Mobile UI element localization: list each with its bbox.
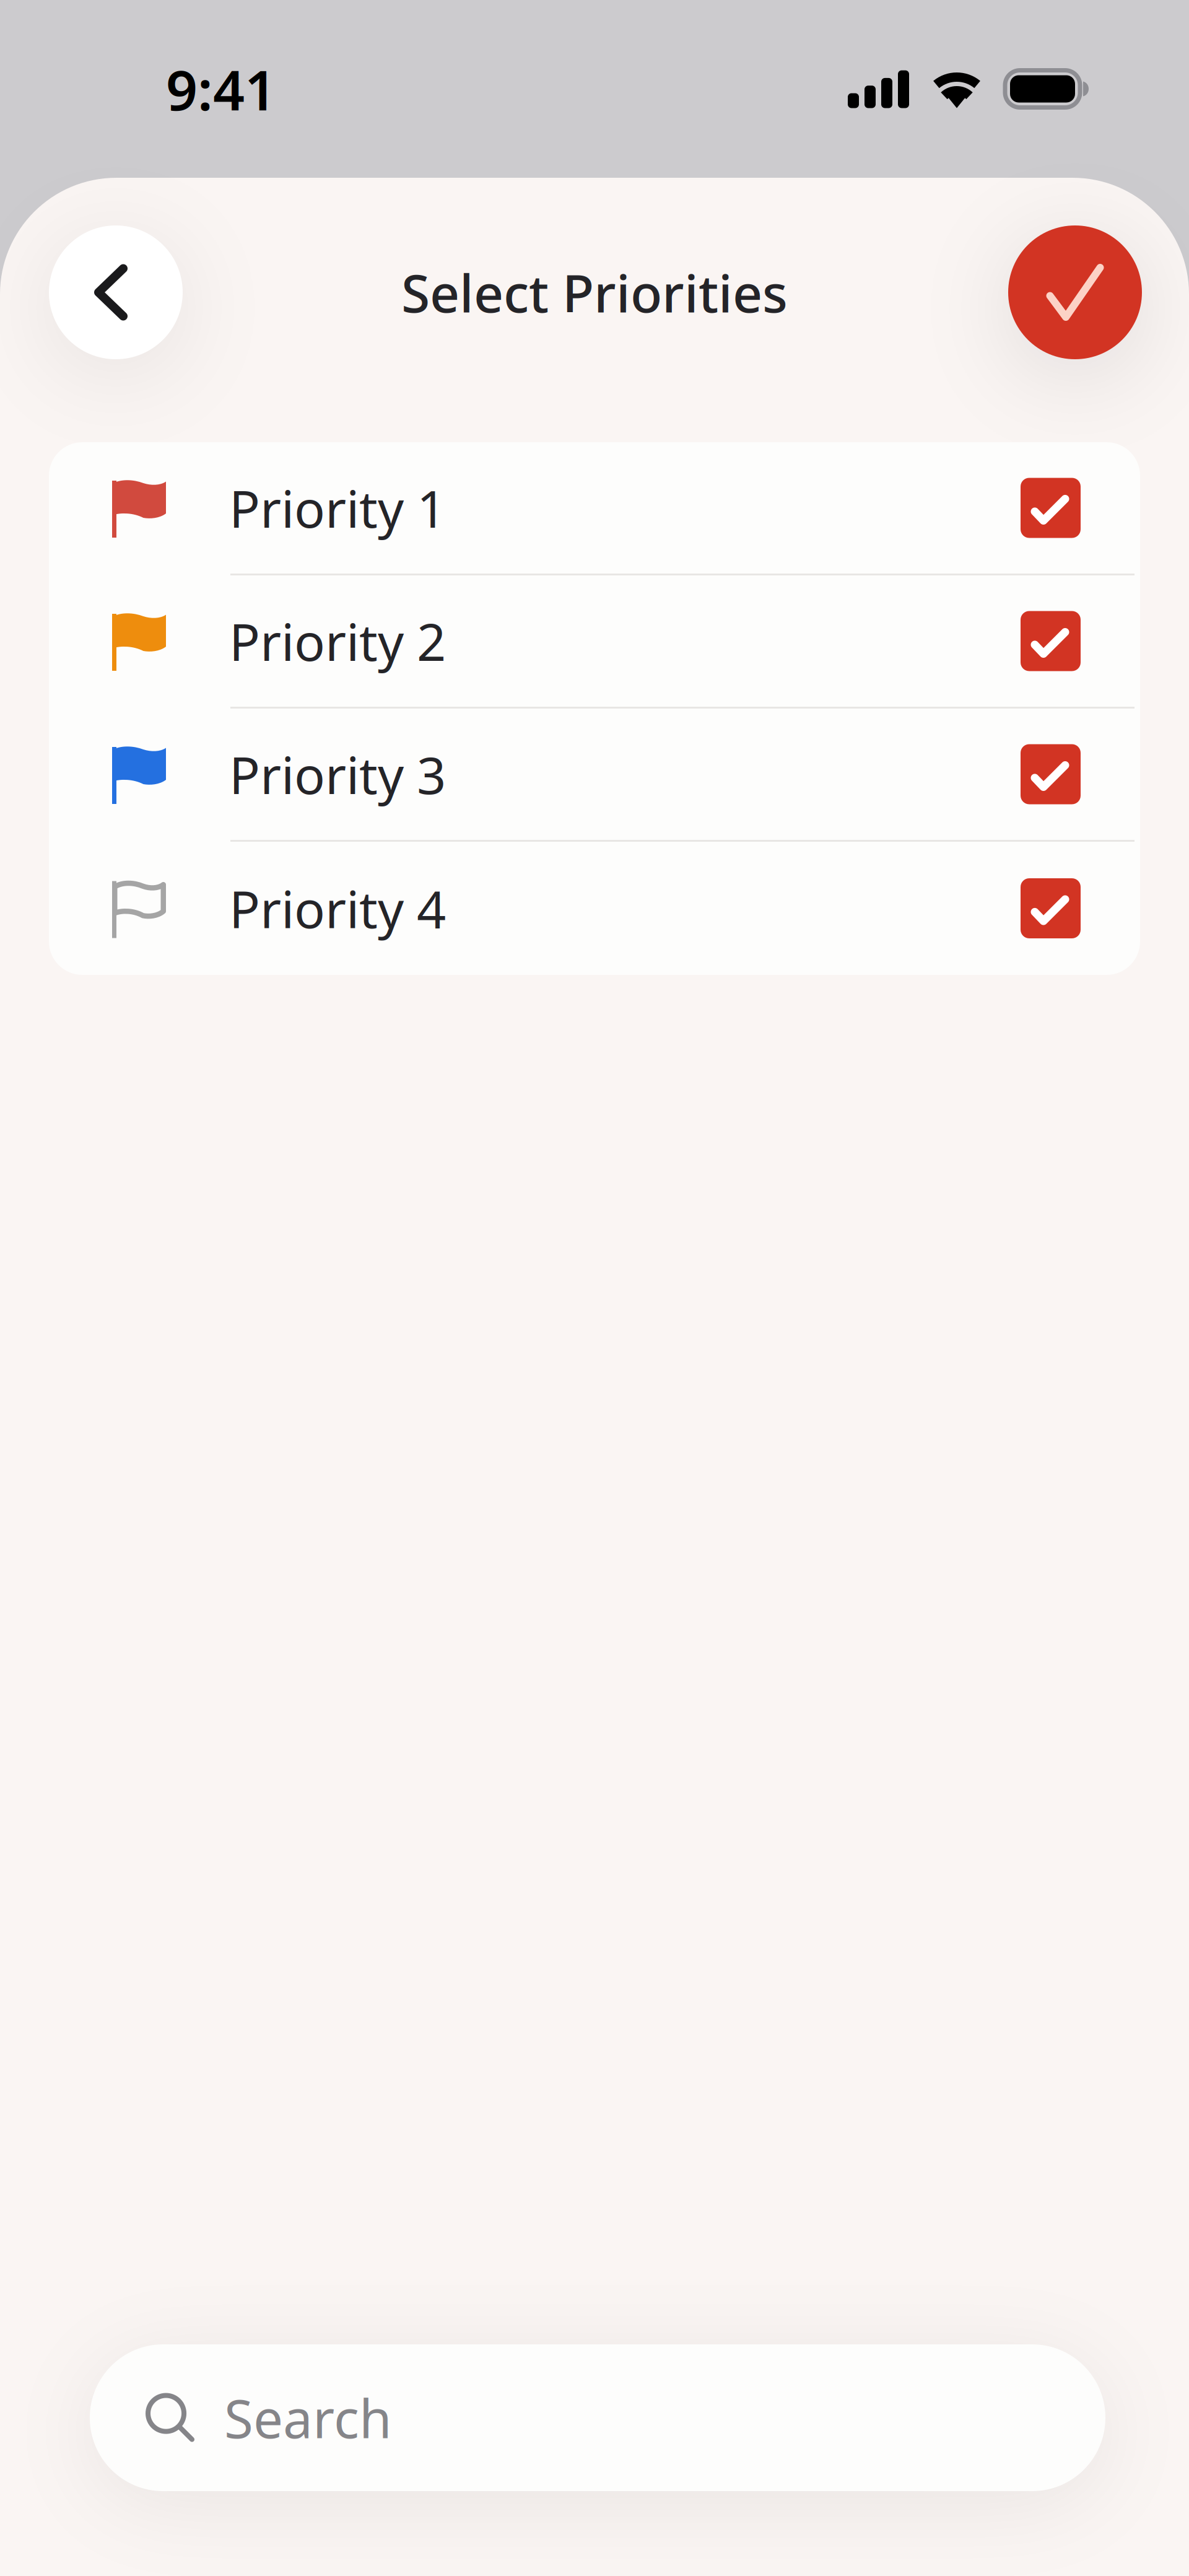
button[interactable]: Priority 2 bbox=[49, 575, 1140, 707]
button[interactable]: Priority 1 bbox=[49, 442, 1140, 574]
button[interactable]: Back bbox=[49, 225, 183, 359]
staticText: Select Priorities bbox=[401, 258, 788, 327]
button[interactable]: Search bbox=[90, 2344, 1105, 2491]
button[interactable]: Priority 3 bbox=[49, 709, 1140, 840]
staticText: Priority 3 bbox=[229, 740, 446, 808]
button[interactable]: Done bbox=[1008, 225, 1142, 359]
staticText: 9:41 bbox=[166, 52, 276, 126]
staticText: Priority 4 bbox=[229, 874, 446, 942]
button[interactable]: Priority 4 bbox=[49, 842, 1140, 975]
staticText: Priority 1 bbox=[229, 474, 446, 542]
staticText: Search bbox=[224, 2383, 392, 2453]
staticText: Priority 2 bbox=[229, 607, 446, 675]
